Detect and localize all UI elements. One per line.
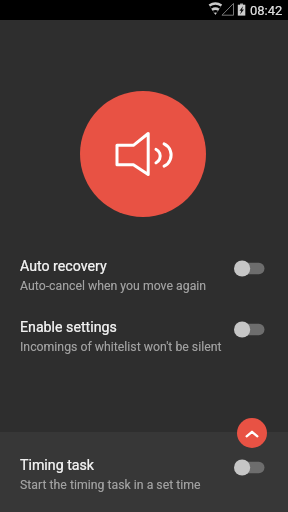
staticText: Start the timing task in a set time: [20, 478, 201, 492]
button[interactable]: Enable settings: [0, 312, 288, 358]
button[interactable]: Timing task: [0, 450, 288, 496]
button[interactable]: Expand: [237, 418, 267, 448]
staticText: Timing task: [20, 457, 94, 474]
staticText: Auto recovery: [20, 258, 107, 275]
staticText: Enable settings: [20, 319, 117, 336]
button[interactable]: [0, 432, 288, 512]
button[interactable]: Toggle silent mode: [80, 91, 206, 217]
staticText: Auto-cancel when you move again: [20, 279, 207, 293]
button[interactable]: Auto recovery: [0, 251, 288, 297]
staticText: Incomings of whitelist won't be silent: [20, 340, 222, 354]
staticText: 08:42: [250, 3, 283, 18]
